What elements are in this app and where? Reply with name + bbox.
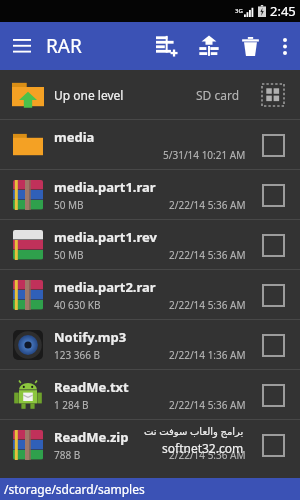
button[interactable]: ReadMe.zip	[0, 420, 300, 469]
staticText: media	[54, 128, 95, 146]
staticText: 2/22/14 1:36 AM	[169, 348, 246, 362]
button[interactable]: Add to archive	[146, 25, 188, 67]
staticText: 5/31/14 10:21 AM	[163, 148, 246, 162]
button[interactable]: Select media.part2.rar	[256, 278, 290, 312]
staticText: 40 630 KB	[54, 298, 101, 312]
staticText: 2/22/14 5:36 AM	[169, 298, 246, 312]
button[interactable]: Select media	[256, 128, 290, 162]
staticText: Up one level	[54, 87, 124, 103]
staticText: Notify.mp3	[54, 328, 127, 346]
button[interactable]: Select media.part1.rev	[256, 228, 290, 262]
button[interactable]: Select all	[256, 78, 290, 112]
button[interactable]: media.part1.rev	[0, 220, 300, 269]
button[interactable]: Extract	[188, 25, 230, 67]
staticText: softnet32.com	[162, 440, 244, 456]
staticText: ReadMe.txt	[54, 378, 129, 396]
staticText: media.part1.rar	[54, 178, 156, 196]
button[interactable]: media.part2.rar	[0, 270, 300, 319]
staticText: SD card	[196, 87, 240, 103]
staticText: media.part2.rar	[54, 278, 156, 296]
staticText: 2/22/14 5:36 AM	[169, 448, 246, 462]
button[interactable]: Select media.part1.rar	[256, 178, 290, 212]
staticText: 2:45	[270, 2, 296, 20]
staticText: 2/22/14 5:36 AM	[169, 248, 246, 262]
staticText: ReadMe.zip	[54, 428, 129, 446]
staticText: /storage/sdcard/samples	[4, 481, 145, 497]
button[interactable]: Menu	[0, 24, 44, 68]
button[interactable]: More options	[270, 31, 300, 61]
button[interactable]: Delete	[230, 26, 270, 66]
button[interactable]: Select ReadMe.zip	[256, 428, 290, 462]
staticText: 2/22/14 5:36 AM	[169, 398, 246, 412]
button[interactable]: media	[0, 120, 300, 169]
staticText: 50 MB	[54, 198, 84, 212]
button[interactable]: Select Notify.mp3	[256, 328, 290, 362]
staticText: برامج والعاب سوفت نت	[144, 424, 244, 438]
staticText: 3G	[235, 7, 243, 15]
staticText: 123 366 B	[54, 348, 101, 362]
button[interactable]: ReadMe.txt	[0, 370, 300, 419]
button[interactable]: /storage/sdcard/samples	[0, 478, 300, 500]
staticText: media.part1.rev	[54, 228, 157, 246]
staticText: RAR	[46, 33, 82, 59]
staticText: 50 MB	[54, 248, 84, 262]
button[interactable]: Up one level	[0, 70, 300, 119]
staticText: 1 284 B	[54, 398, 89, 412]
staticText: 2/22/14 5:36 AM	[169, 198, 246, 212]
button[interactable]: Select ReadMe.txt	[256, 378, 290, 412]
button[interactable]: Notify.mp3	[0, 320, 300, 369]
button[interactable]: media.part1.rar	[0, 170, 300, 219]
staticText: 788 B	[54, 448, 81, 462]
